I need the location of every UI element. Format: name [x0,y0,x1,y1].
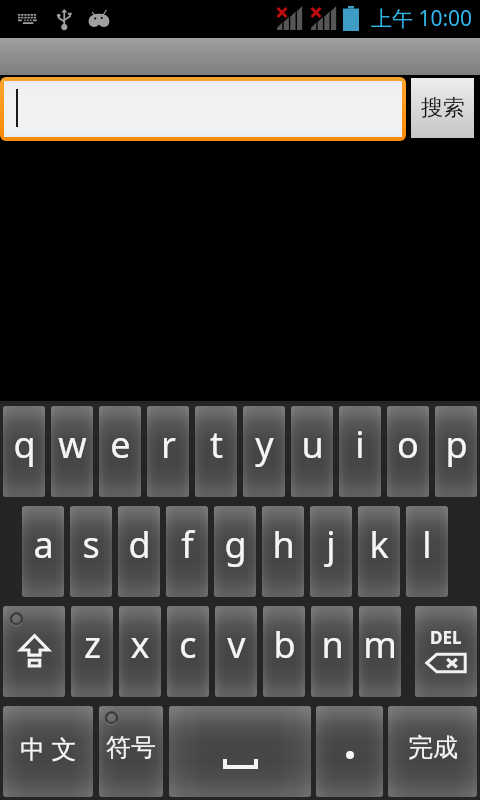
button[interactable]: c [167,606,209,697]
button[interactable]: a [22,506,64,597]
staticText: w [58,420,87,469]
button[interactable]: l [406,506,448,597]
button[interactable]: y [243,406,285,497]
staticText: n [321,620,344,669]
button[interactable]: b [263,606,305,697]
button[interactable]: o [387,406,429,497]
staticText: s [82,520,100,569]
button[interactable]: w [51,406,93,497]
staticText: x [130,620,150,669]
button[interactable]: z [71,606,113,697]
staticText: c [179,620,197,669]
staticText: q [13,420,36,469]
staticText: DEL [430,626,462,649]
staticText: z [84,620,101,669]
staticText: f [181,520,194,569]
button[interactable] [0,77,406,141]
button[interactable]: f [166,506,208,597]
button[interactable]: v [215,606,257,697]
button[interactable]: 中 文 [3,706,93,797]
button[interactable]: 符号 [99,706,163,797]
staticText: t [210,420,223,469]
staticText: y [255,420,274,469]
staticText: h [272,520,295,569]
staticText: i [355,420,365,469]
staticText: 上午 10:00 [371,4,473,33]
staticText: j [326,520,336,569]
staticText: o [397,420,419,469]
button[interactable]: i [339,406,381,497]
button[interactable]: g [214,506,256,597]
staticText: p [445,420,468,469]
button[interactable]: n [311,606,353,697]
button[interactable]: 搜索 [411,78,474,138]
staticText: d [128,520,151,569]
staticText: g [224,520,247,569]
staticText: l [422,520,432,569]
button[interactable]: m [359,606,401,697]
button[interactable]: Shift [3,606,65,697]
button[interactable]: Period [316,706,383,797]
staticText: 中 文 [20,731,77,765]
button[interactable]: d [118,506,160,597]
staticText: m [363,620,397,669]
staticText: u [301,420,324,469]
staticText: 搜索 [421,94,465,122]
button[interactable]: Space [169,706,311,797]
button[interactable]: x [119,606,161,697]
button[interactable]: r [147,406,189,497]
staticText: 符号 [106,732,156,763]
staticText: 完成 [408,732,458,763]
button[interactable]: 完成 [388,706,477,797]
staticText: k [369,520,389,569]
button[interactable]: h [262,506,304,597]
button[interactable]: q [3,406,45,497]
staticText: b [273,620,296,669]
button[interactable]: Delete [415,606,477,697]
button[interactable]: s [70,506,112,597]
staticText: e [110,420,131,469]
staticText: v [227,620,246,669]
staticText: r [161,420,176,469]
staticText: a [33,520,54,569]
button[interactable]: e [99,406,141,497]
button[interactable]: k [358,506,400,597]
button[interactable]: j [310,506,352,597]
button[interactable]: t [195,406,237,497]
button[interactable]: p [435,406,477,497]
button[interactable]: u [291,406,333,497]
